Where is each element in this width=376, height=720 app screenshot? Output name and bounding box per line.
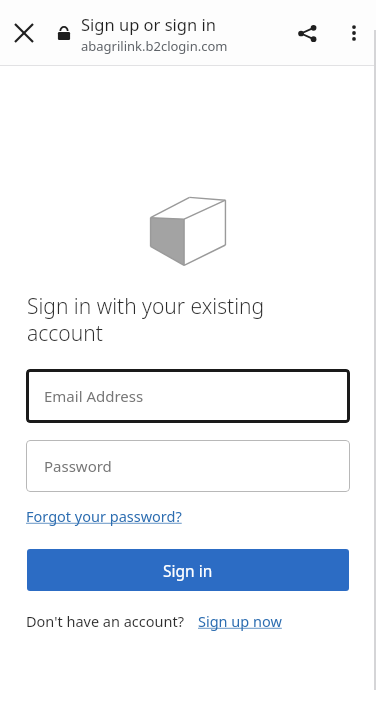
button[interactable]: Close xyxy=(2,11,46,55)
staticText: Sign in xyxy=(163,560,213,581)
button[interactable]: Sign up now xyxy=(198,609,282,633)
staticText: Forgot your password? xyxy=(26,506,182,526)
staticText: abagrilink.b2clogin.com xyxy=(81,37,228,55)
button[interactable]: Forgot your password? xyxy=(26,504,182,528)
staticText: Email Address xyxy=(44,386,144,406)
staticText: Sign up or sign in xyxy=(81,13,216,35)
staticText: Password xyxy=(44,456,112,476)
button[interactable]: Share xyxy=(285,11,329,55)
button[interactable]: Email Address xyxy=(26,369,350,423)
button[interactable]: Sign in xyxy=(27,549,349,591)
staticText: Sign up now xyxy=(198,611,282,631)
button[interactable]: More options xyxy=(332,11,376,55)
staticText: Don't have an account? xyxy=(26,611,184,631)
staticText: Sign in with your existing account xyxy=(27,292,330,347)
button[interactable]: Password xyxy=(26,440,350,492)
